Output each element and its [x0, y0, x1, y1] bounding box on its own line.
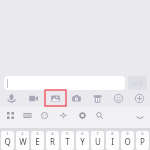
staticText: 2 — [21, 131, 24, 136]
staticText: 1 — [6, 131, 9, 136]
button[interactable]: Stickers — [36, 106, 52, 124]
button[interactable] — [4, 76, 125, 90]
button[interactable]: 3 — [31, 131, 44, 150]
staticText: 6 — [81, 131, 84, 136]
button[interactable]: Hide keyboard — [132, 109, 148, 125]
button[interactable]: Keyboard layouts — [2, 106, 18, 124]
button[interactable]: Settings — [74, 106, 90, 124]
button[interactable]: 2 — [16, 131, 29, 150]
button[interactable]: File — [87, 90, 108, 106]
staticText: 4 — [51, 131, 54, 136]
button[interactable]: 6 — [76, 131, 89, 150]
button[interactable]: Gallery — [44, 90, 66, 106]
staticText: I — [111, 136, 114, 147]
staticText: 전송 — [132, 79, 144, 87]
button[interactable]: Clipboard — [19, 106, 35, 124]
button[interactable]: 9 — [121, 131, 134, 150]
button[interactable]: 1 — [1, 131, 14, 150]
staticText: 8 — [111, 131, 114, 136]
staticText: T — [65, 136, 70, 147]
staticText: 3 — [36, 131, 39, 136]
staticText: 9 — [126, 131, 129, 136]
staticText: P — [140, 136, 145, 147]
staticText: 5 — [66, 131, 69, 136]
button[interactable]: Voice message — [0, 90, 22, 106]
button[interactable]: 8 — [106, 131, 119, 150]
staticText: W — [19, 136, 27, 147]
button[interactable]: Video — [22, 90, 44, 106]
button[interactable]: 0 — [136, 131, 149, 150]
staticText: 0 — [141, 131, 144, 136]
button[interactable]: 5 — [61, 131, 74, 150]
button[interactable]: Emoji — [108, 90, 129, 106]
button[interactable]: Search — [91, 106, 107, 124]
staticText: E — [35, 136, 40, 147]
staticText: Y — [80, 136, 85, 147]
button[interactable]: Camera — [66, 90, 87, 106]
button[interactable]: Translate — [55, 106, 71, 124]
staticText: Q — [4, 136, 11, 147]
button[interactable]: 7 — [91, 131, 104, 150]
staticText: 7 — [96, 131, 99, 136]
button[interactable]: 4 — [46, 131, 59, 150]
button[interactable]: More — [129, 90, 150, 106]
staticText: O — [124, 136, 131, 147]
staticText: R — [50, 136, 55, 147]
staticText: U — [95, 136, 101, 147]
